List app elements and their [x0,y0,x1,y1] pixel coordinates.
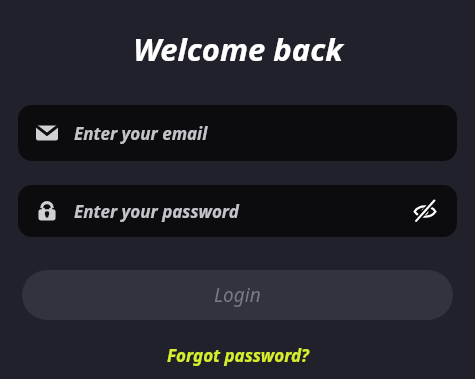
button[interactable]: Show password [407,193,443,229]
staticText: Login [214,282,261,308]
button[interactable]: Enter your email [18,105,457,161]
button[interactable]: Forgot password? [159,342,317,369]
staticText: Enter your email [74,122,208,145]
button[interactable]: Login [22,270,453,320]
staticText: Enter your password [74,200,407,223]
button[interactable]: Enter your password [18,185,457,237]
staticText: Welcome back [133,28,343,70]
staticText: Forgot password? [167,344,309,367]
